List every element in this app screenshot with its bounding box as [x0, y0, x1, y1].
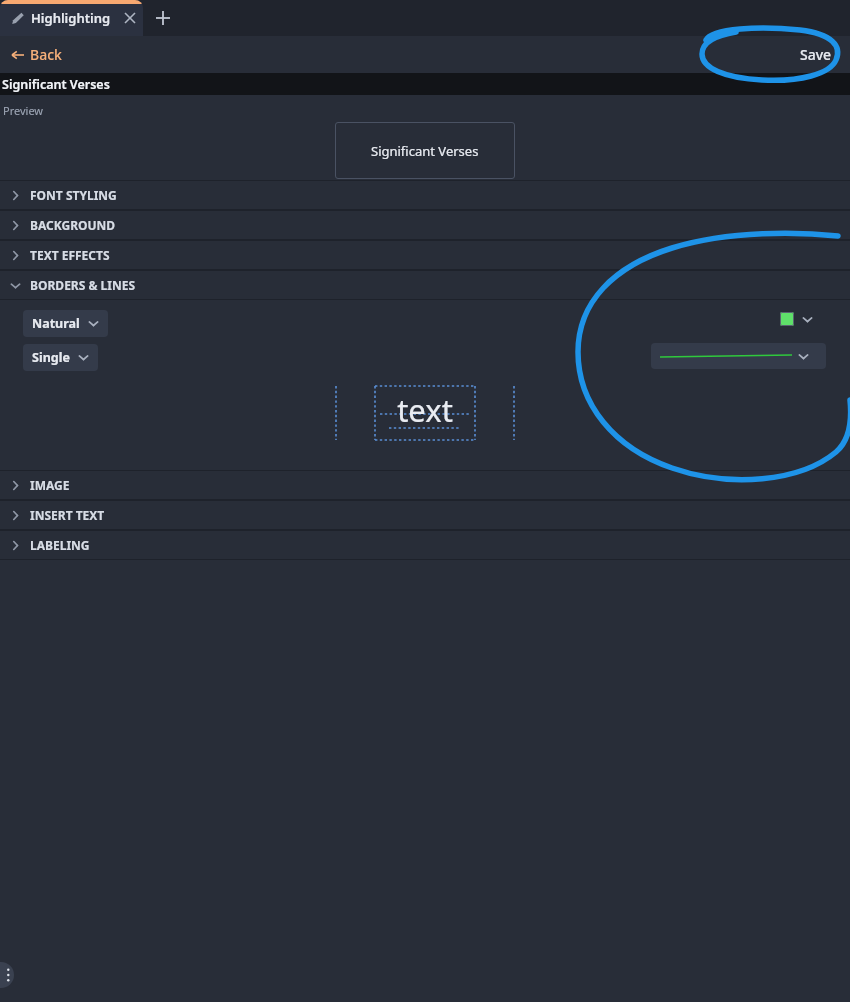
button[interactable]: INSERT TEXT — [0, 501, 850, 529]
staticText: text — [397, 389, 453, 431]
staticText: FONT STYLING — [30, 187, 117, 203]
staticText: BACKGROUND — [30, 217, 116, 233]
staticText: LABELING — [30, 537, 90, 553]
staticText: TEXT EFFECTS — [30, 247, 110, 263]
button[interactable]: FONT STYLING — [0, 181, 850, 209]
staticText: Natural — [32, 315, 80, 332]
button[interactable]: Close tab — [121, 9, 139, 27]
button[interactable]: New tab — [143, 0, 183, 36]
button[interactable] — [780, 312, 813, 326]
button[interactable]: Save — [782, 37, 850, 72]
button[interactable]: BORDERS & LINES — [0, 271, 850, 299]
staticText: Back — [30, 45, 62, 64]
button[interactable]: TEXT EFFECTS — [0, 241, 850, 269]
button[interactable]: IMAGE — [0, 471, 850, 499]
button[interactable]: Highlighting — [0, 0, 143, 36]
staticText: IMAGE — [30, 477, 70, 493]
button[interactable] — [651, 343, 826, 369]
staticText: Save — [800, 45, 832, 64]
staticText: Single — [32, 349, 70, 366]
staticText: Significant Verses — [2, 76, 110, 93]
staticText: Preview — [3, 103, 44, 118]
button[interactable]: Back — [8, 41, 66, 68]
staticText: Highlighting — [31, 9, 111, 27]
staticText: Significant Verses — [371, 142, 479, 160]
button[interactable]: BACKGROUND — [0, 211, 850, 239]
button[interactable]: Natural — [23, 310, 108, 337]
button[interactable]: Single — [23, 344, 98, 371]
button[interactable]: Significant Verses — [335, 122, 515, 179]
staticText: BORDERS & LINES — [30, 277, 136, 293]
staticText: INSERT TEXT — [30, 507, 105, 523]
button[interactable]: LABELING — [0, 531, 850, 559]
button[interactable]: More options — [0, 962, 14, 988]
